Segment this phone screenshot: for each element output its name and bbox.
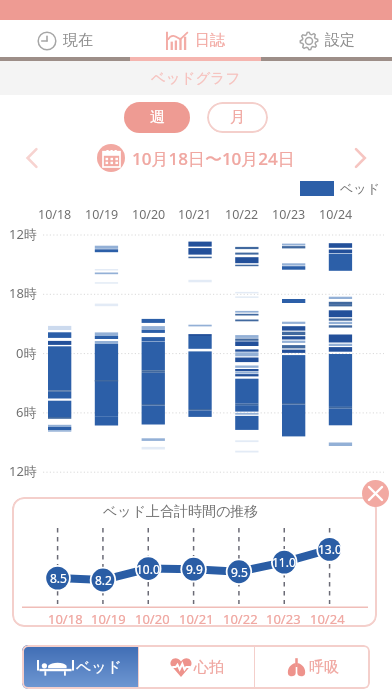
staticText: 10/19	[85, 206, 119, 223]
staticText: 9.5	[231, 564, 248, 580]
staticText: 10/22	[225, 206, 259, 223]
staticText: 10/23	[266, 610, 301, 627]
button[interactable]: 10月18日〜10月24日	[97, 144, 295, 172]
staticText: 10/23	[272, 206, 306, 223]
staticText: 12時	[9, 462, 37, 480]
staticText: 10/21	[178, 206, 212, 223]
staticText: 10/22	[223, 610, 258, 627]
button[interactable]: 日誌	[130, 20, 261, 61]
staticText: 18時	[9, 284, 37, 302]
staticText: 10/19	[91, 610, 126, 627]
button[interactable]: 呼吸	[255, 645, 370, 689]
button[interactable]: 月	[207, 102, 268, 133]
staticText: 設定	[325, 31, 355, 50]
staticText: 10.0	[136, 561, 160, 577]
staticText: 13.0	[318, 541, 342, 557]
button[interactable]: 設定	[261, 20, 392, 61]
staticText: 0時	[16, 344, 37, 362]
staticText: 6時	[16, 403, 37, 421]
button[interactable]: Next week	[344, 142, 376, 174]
staticText: 10/21	[179, 610, 214, 627]
staticText: 月	[230, 108, 245, 127]
staticText: 心拍	[194, 658, 224, 677]
staticText: ベッド	[340, 180, 380, 196]
staticText: 日誌	[195, 31, 225, 50]
staticText: ベッド	[76, 658, 123, 677]
staticText: 10/18	[38, 206, 72, 223]
staticText: 8.5	[50, 570, 67, 586]
button[interactable]: ベッド	[22, 645, 138, 689]
staticText: 現在	[63, 31, 93, 50]
button[interactable]: Previous week	[16, 142, 48, 174]
button[interactable]: 現在	[0, 20, 130, 61]
staticText: ベッド上合計時間の推移	[103, 503, 259, 521]
staticText: 9.9	[186, 561, 203, 577]
staticText: 11.0	[272, 554, 296, 570]
staticText: 呼吸	[309, 658, 339, 677]
button[interactable]: Close	[362, 480, 389, 507]
staticText: 10/18	[48, 610, 83, 627]
staticText: 8.2	[95, 572, 112, 588]
staticText: 10/24	[310, 610, 345, 627]
staticText: 10/20	[132, 206, 166, 223]
staticText: 10/20	[135, 610, 170, 627]
staticText: ベッドグラフ	[151, 69, 241, 87]
staticText: 10月18日〜10月24日	[132, 147, 295, 170]
staticText: 12時	[9, 225, 37, 243]
staticText: 週	[150, 108, 165, 127]
button[interactable]: 週	[124, 102, 190, 133]
button[interactable]: 心拍	[139, 645, 254, 689]
staticText: 10/24	[319, 206, 353, 223]
